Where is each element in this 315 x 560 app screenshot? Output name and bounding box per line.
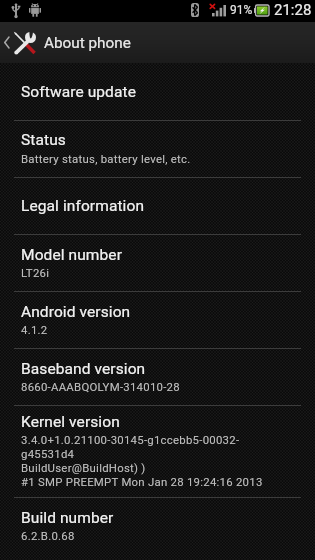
button[interactable]: Navigate up (0, 22, 41, 63)
staticText: Android version (21, 303, 131, 321)
staticText: LT26i (21, 266, 50, 279)
staticText: Battery status, battery level, etc. (21, 152, 191, 165)
staticText: Baseband version (21, 360, 146, 378)
staticText: g45531d4 (21, 447, 75, 460)
staticText: #1 SMP PREEMPT Mon Jan 28 19:24:16 2013 (21, 475, 263, 488)
staticText: Kernel version (21, 413, 120, 431)
button[interactable]: Model number (0, 235, 315, 292)
button[interactable]: Build number (0, 498, 315, 560)
staticText: BuildUser@BuildHost) ) (21, 461, 146, 474)
staticText: 4.1.2 (21, 323, 48, 336)
button[interactable]: Baseband version (0, 349, 315, 406)
button[interactable]: Software update (0, 63, 315, 121)
button[interactable]: Legal information (0, 178, 315, 235)
staticText: About phone (44, 34, 131, 52)
staticText: 3.4.0+1.0.21100-30145-g1ccebb5-00032- (21, 433, 240, 446)
staticText: 21:28 (274, 1, 312, 19)
button[interactable]: Kernel version (0, 406, 315, 498)
staticText: Status (21, 131, 66, 149)
staticText: 91% (230, 3, 253, 17)
button[interactable]: Status (0, 121, 315, 178)
staticText: Software update (21, 83, 136, 101)
staticText: 6.2.B.0.68 (21, 529, 75, 542)
button[interactable]: Android version (0, 292, 315, 349)
staticText: Build number (21, 509, 114, 527)
staticText: Legal information (21, 197, 145, 215)
staticText: 8660-AAABQOLYM-314010-28 (21, 380, 180, 393)
staticText: Model number (21, 246, 123, 264)
